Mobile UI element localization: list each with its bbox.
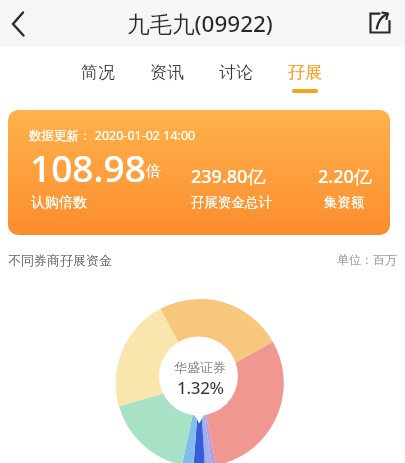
staticText: 华盛证券 bbox=[174, 359, 226, 375]
staticText: 简况 bbox=[81, 62, 115, 83]
staticText: 九毛九(09922) bbox=[127, 8, 273, 39]
button[interactable] bbox=[367, 9, 397, 39]
staticText: 孖展资金总计 bbox=[191, 194, 272, 211]
staticText: 2.20亿 bbox=[318, 164, 372, 189]
staticText: 数据更新： 2020-01-02 14:00 bbox=[29, 127, 196, 144]
staticText: 不同券商孖展资金 bbox=[8, 252, 112, 268]
button[interactable] bbox=[6, 7, 40, 41]
staticText: 讨论 bbox=[219, 62, 253, 83]
button[interactable]: 资讯 bbox=[132, 47, 201, 93]
staticText: 单位：百万 bbox=[337, 252, 397, 267]
staticText: 1.32% bbox=[177, 376, 224, 399]
button[interactable]: 孖展 bbox=[270, 47, 339, 93]
button[interactable]: 讨论 bbox=[201, 47, 270, 93]
button[interactable]: 简况 bbox=[63, 47, 132, 93]
staticText: 239.80亿 bbox=[191, 164, 266, 189]
staticText: 认购倍数 bbox=[31, 194, 87, 212]
button[interactable]: 数据更新： 2020-01-02 14:00 bbox=[8, 110, 390, 235]
staticText: 资讯 bbox=[150, 62, 184, 83]
staticText: 倍 bbox=[146, 162, 161, 181]
staticText: 孖展 bbox=[288, 62, 322, 83]
staticText: 集资额 bbox=[324, 194, 365, 211]
staticText: 108.98 bbox=[30, 142, 146, 192]
